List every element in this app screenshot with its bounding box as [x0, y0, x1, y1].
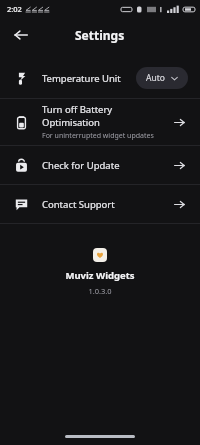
- staticText: Temperature Unit: [42, 72, 121, 85]
- staticText: Check for Update: [42, 159, 120, 172]
- button[interactable]: Contact Support: [0, 185, 200, 223]
- button[interactable]: Check for Update: [0, 146, 200, 184]
- staticText: 1.0.3.0: [88, 286, 112, 296]
- staticText: Turn off Battery Optimisation: [42, 103, 162, 129]
- button[interactable]: Auto: [136, 67, 188, 89]
- button[interactable]: Temperature Unit: [0, 58, 200, 98]
- other: Open: [170, 113, 188, 131]
- staticText: Contact Support: [42, 198, 115, 211]
- staticText: 2:02: [7, 4, 22, 14]
- other: Open: [170, 156, 188, 174]
- button[interactable]: Back: [8, 22, 34, 48]
- staticText: For uninterrupted widget updates: [42, 131, 154, 141]
- staticText: Muviz Widgets: [65, 269, 135, 282]
- button[interactable]: Turn off Battery Optimisation: [0, 99, 200, 145]
- staticText: Settings: [75, 27, 125, 43]
- staticText: Auto: [146, 72, 165, 84]
- other: Open: [170, 195, 188, 213]
